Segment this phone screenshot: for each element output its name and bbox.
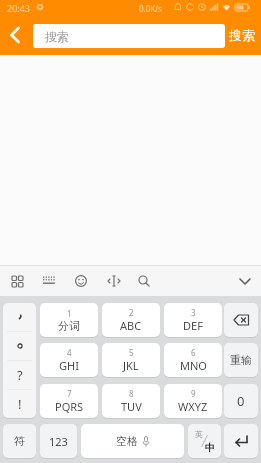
button[interactable]: 1 bbox=[40, 303, 98, 337]
button[interactable]: 123 bbox=[40, 424, 77, 458]
staticText: 1 bbox=[67, 308, 72, 319]
staticText: TUV bbox=[121, 399, 142, 414]
button[interactable]: 8 bbox=[102, 384, 160, 418]
staticText: 重输 bbox=[230, 353, 252, 367]
button[interactable]: 符 bbox=[3, 424, 36, 458]
button[interactable] bbox=[3, 303, 36, 331]
staticText: GHI bbox=[59, 358, 79, 373]
button[interactable]: 6 bbox=[164, 343, 222, 377]
staticText: MNO bbox=[180, 358, 207, 373]
staticText: 20:43 bbox=[7, 2, 31, 14]
staticText: 0.0K/s bbox=[139, 3, 163, 14]
button[interactable]: ? bbox=[3, 361, 36, 389]
button[interactable]: 5 bbox=[102, 343, 160, 377]
button[interactable] bbox=[6, 270, 28, 292]
staticText: ! bbox=[18, 395, 22, 413]
staticText: 搜索 bbox=[45, 29, 69, 44]
button[interactable]: ? bbox=[3, 303, 36, 418]
button[interactable] bbox=[3, 332, 36, 360]
button[interactable] bbox=[38, 270, 60, 292]
button[interactable]: 2 bbox=[102, 303, 160, 337]
button[interactable]: 空格 bbox=[81, 424, 184, 458]
staticText: JKL bbox=[123, 358, 139, 373]
button[interactable] bbox=[224, 303, 258, 337]
button[interactable]: 搜索 bbox=[33, 24, 225, 48]
staticText: 英 bbox=[195, 429, 203, 439]
staticText: 分词 bbox=[58, 319, 80, 333]
button[interactable]: 重输 bbox=[224, 343, 258, 377]
staticText: 5 bbox=[129, 347, 134, 358]
staticText: 4 bbox=[67, 347, 72, 358]
staticText: 搜索 bbox=[229, 27, 255, 43]
staticText: DEF bbox=[183, 318, 203, 333]
staticText: 9 bbox=[191, 388, 196, 399]
staticText: 7 bbox=[67, 388, 72, 399]
button[interactable]: 英 bbox=[188, 424, 221, 458]
staticText: PQRS bbox=[55, 399, 84, 414]
staticText: 8 bbox=[129, 388, 134, 399]
button[interactable]: 3 bbox=[164, 303, 222, 337]
button[interactable] bbox=[103, 270, 125, 292]
staticText: 符 bbox=[14, 434, 25, 448]
staticText: 中 bbox=[205, 441, 215, 454]
staticText: 0 bbox=[237, 392, 245, 410]
button[interactable]: 0 bbox=[224, 384, 258, 418]
button[interactable] bbox=[0, 19, 29, 50]
button[interactable]: ! bbox=[3, 390, 36, 418]
button[interactable]: 9 bbox=[164, 384, 222, 418]
button[interactable]: 7 bbox=[40, 384, 98, 418]
button[interactable]: 4 bbox=[40, 343, 98, 377]
button[interactable]: 搜索 bbox=[223, 14, 261, 55]
button[interactable] bbox=[224, 424, 258, 458]
staticText: 空格 bbox=[116, 434, 138, 448]
staticText: 6 bbox=[191, 347, 196, 358]
staticText: 3 bbox=[191, 307, 196, 318]
staticText: WXYZ bbox=[178, 399, 208, 414]
button[interactable] bbox=[70, 270, 92, 292]
button[interactable] bbox=[233, 270, 257, 292]
staticText: ABC bbox=[120, 318, 142, 333]
staticText: 123 bbox=[49, 434, 68, 449]
staticText: 2 bbox=[129, 307, 134, 318]
button[interactable] bbox=[133, 270, 155, 292]
staticText: ? bbox=[17, 366, 23, 384]
